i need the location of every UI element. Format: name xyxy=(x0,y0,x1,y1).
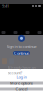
button[interactable]: Play xyxy=(13,31,17,34)
button[interactable]: Continue xyxy=(13,51,30,55)
button[interactable]: More xyxy=(37,31,41,34)
button[interactable]: Forward xyxy=(25,31,29,34)
button[interactable]: Cancel xyxy=(0,87,43,90)
button[interactable]: Log in xyxy=(0,75,43,78)
staticText: Cancel xyxy=(15,86,27,92)
button[interactable]: More options xyxy=(0,81,43,84)
staticText: Already have an account? xyxy=(7,65,35,75)
button[interactable]: Rewind xyxy=(1,31,5,34)
staticText: More options xyxy=(10,80,33,86)
staticText: Sign in to continue xyxy=(6,44,36,49)
staticText: Log in xyxy=(16,74,26,80)
staticText: Continue xyxy=(14,50,29,56)
staticText: 9:41 xyxy=(2,3,9,9)
